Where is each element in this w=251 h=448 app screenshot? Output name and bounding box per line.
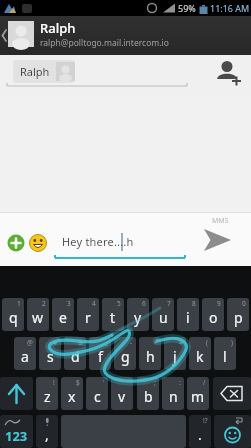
button[interactable]: !? — [189, 415, 211, 448]
staticText: y — [134, 308, 142, 327]
button[interactable]: ) — [214, 337, 236, 370]
button[interactable]: 6 — [127, 298, 149, 331]
staticText: : — [179, 378, 181, 387]
button[interactable]: $ — [61, 377, 83, 410]
button[interactable]: 2 — [27, 298, 49, 331]
staticText: x — [68, 387, 76, 406]
staticText: t — [110, 308, 116, 327]
staticText: ( — [206, 338, 208, 347]
button[interactable]: 3 — [52, 298, 74, 331]
button[interactable]: & — [64, 337, 86, 370]
button[interactable]: ( — [189, 337, 211, 370]
staticText: z — [44, 387, 51, 406]
staticText: = — [179, 338, 183, 347]
staticText: h — [146, 347, 155, 366]
staticText: b — [144, 387, 153, 406]
button[interactable]: ' — [86, 377, 108, 410]
button[interactable]: Ralph — [13, 60, 75, 83]
button[interactable]: 123 — [0, 415, 33, 448]
staticText: @ — [27, 338, 33, 347]
button[interactable]: _ — [89, 337, 111, 370]
staticText: MMS — [212, 216, 229, 226]
staticText: a — [21, 347, 29, 366]
button[interactable]: 1 — [2, 298, 24, 331]
staticText: 3 — [67, 299, 71, 308]
staticText: 8 — [192, 299, 196, 308]
button[interactable] — [213, 377, 251, 410]
staticText: 6 — [142, 299, 146, 308]
staticText: & — [78, 338, 83, 347]
button[interactable] — [214, 415, 251, 448]
staticText: - — [130, 338, 133, 347]
staticText: 2 — [42, 299, 46, 308]
staticText: ! — [53, 378, 55, 387]
button[interactable]: Ralph — [0, 16, 251, 55]
button[interactable] — [210, 57, 246, 93]
button[interactable]: @ — [14, 337, 36, 370]
button[interactable] — [196, 222, 238, 258]
staticText: 4 — [92, 299, 96, 308]
staticText: v — [118, 387, 126, 406]
button[interactable]: # — [39, 337, 61, 370]
staticText: Hey there....h — [62, 234, 134, 249]
staticText: d — [71, 347, 80, 366]
staticText: , — [45, 425, 49, 444]
staticText: Ralph — [20, 64, 50, 79]
staticText: u — [159, 308, 168, 327]
staticText: # — [53, 338, 58, 347]
button[interactable]: 5 — [102, 298, 124, 331]
button[interactable]: 0 — [227, 298, 249, 331]
staticText: ; — [154, 378, 156, 387]
staticText: 123 — [5, 427, 28, 445]
staticText: c — [94, 387, 101, 406]
staticText: g — [121, 347, 130, 366]
staticText: q — [9, 308, 18, 327]
staticText: Ralph — [40, 19, 76, 37]
staticText: 1 — [17, 299, 21, 308]
staticText: ralph@polltogo.mail.intercom.io — [40, 37, 169, 49]
button[interactable]: 4 — [77, 298, 99, 331]
button[interactable]: : — [162, 377, 184, 410]
staticText: e — [59, 308, 67, 327]
button[interactable]: " — [111, 377, 133, 410]
staticText: r — [85, 308, 91, 327]
staticText: . — [198, 425, 202, 444]
staticText: " — [127, 378, 130, 387]
staticText: k — [196, 347, 204, 366]
staticText: !? — [203, 416, 208, 425]
button[interactable]: + — [139, 337, 161, 370]
staticText: n — [169, 387, 178, 406]
button[interactable]: = — [164, 337, 186, 370]
staticText: $ — [76, 378, 80, 387]
staticText: s — [47, 347, 54, 366]
staticText: 9 — [217, 299, 221, 308]
staticText: l — [223, 347, 227, 366]
staticText: _ — [105, 338, 108, 347]
staticText: 5 — [117, 299, 121, 308]
staticText: j — [173, 347, 177, 366]
button[interactable]: 7 — [152, 298, 174, 331]
staticText: m — [191, 387, 205, 406]
button[interactable] — [0, 377, 33, 410]
button[interactable]: , — [36, 415, 58, 448]
staticText: f — [98, 347, 103, 366]
staticText: i — [186, 308, 190, 327]
staticText: o — [209, 308, 218, 327]
button[interactable]: 9 — [202, 298, 224, 331]
staticText: ) — [231, 338, 233, 347]
staticText: 11:16 AM — [210, 2, 250, 14]
button[interactable]: - — [114, 337, 136, 370]
button[interactable]: ! — [36, 377, 58, 410]
staticText: w — [32, 308, 44, 327]
button[interactable]: / — [187, 377, 209, 410]
staticText: + — [154, 338, 158, 347]
button[interactable]: 8 — [177, 298, 199, 331]
staticText: 7 — [167, 299, 171, 308]
staticText: / — [203, 378, 206, 387]
staticText: 0 — [242, 299, 246, 308]
staticText: p — [234, 308, 243, 327]
staticText: ' — [103, 378, 105, 387]
button[interactable]: ; — [137, 377, 159, 410]
staticText: 59% — [178, 2, 196, 14]
